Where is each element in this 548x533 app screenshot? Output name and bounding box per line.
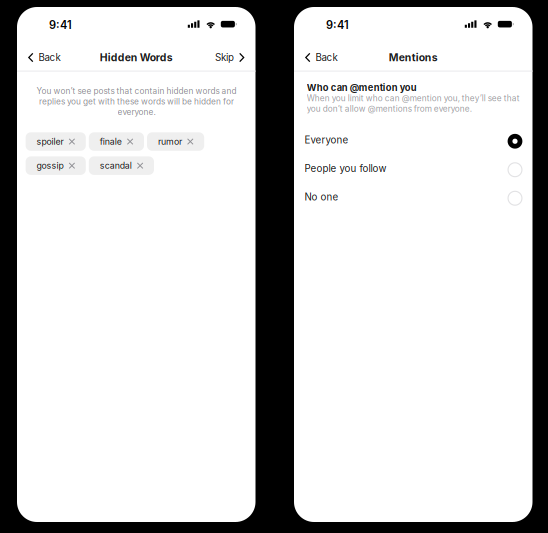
button[interactable]: Skip xyxy=(204,44,255,71)
button[interactable]: finale xyxy=(89,132,144,151)
staticText: Who can @mention you xyxy=(307,82,417,93)
button[interactable]: spoiler xyxy=(26,132,86,151)
staticText: Hidden Words xyxy=(100,51,173,64)
staticText: Mentions xyxy=(389,51,438,64)
staticText: Back xyxy=(315,52,337,63)
staticText: Everyone xyxy=(304,134,348,146)
staticText: rumor xyxy=(158,136,182,147)
staticText: People you follow xyxy=(304,163,386,174)
staticText: scandal xyxy=(100,160,132,171)
staticText: No one xyxy=(304,191,338,203)
button[interactable]: No one xyxy=(294,183,532,211)
staticText: You won’t see posts that contain hidden … xyxy=(36,86,236,117)
button[interactable]: scandal xyxy=(89,156,154,175)
staticText: gossip xyxy=(37,160,64,171)
staticText: When you limit who can @mention you, the… xyxy=(307,93,520,114)
staticText: 9:41 xyxy=(49,18,72,32)
button[interactable]: gossip xyxy=(26,156,86,175)
staticText: finale xyxy=(100,136,122,147)
staticText: Skip xyxy=(215,52,234,63)
button[interactable]: Back xyxy=(17,44,71,71)
staticText: spoiler xyxy=(37,136,64,147)
button[interactable]: rumor xyxy=(147,132,204,151)
button[interactable]: Back xyxy=(294,44,348,71)
staticText: 9:41 xyxy=(326,18,349,32)
button[interactable]: People you follow xyxy=(294,154,532,183)
button[interactable]: Everyone xyxy=(294,126,532,154)
staticText: Back xyxy=(38,52,60,63)
